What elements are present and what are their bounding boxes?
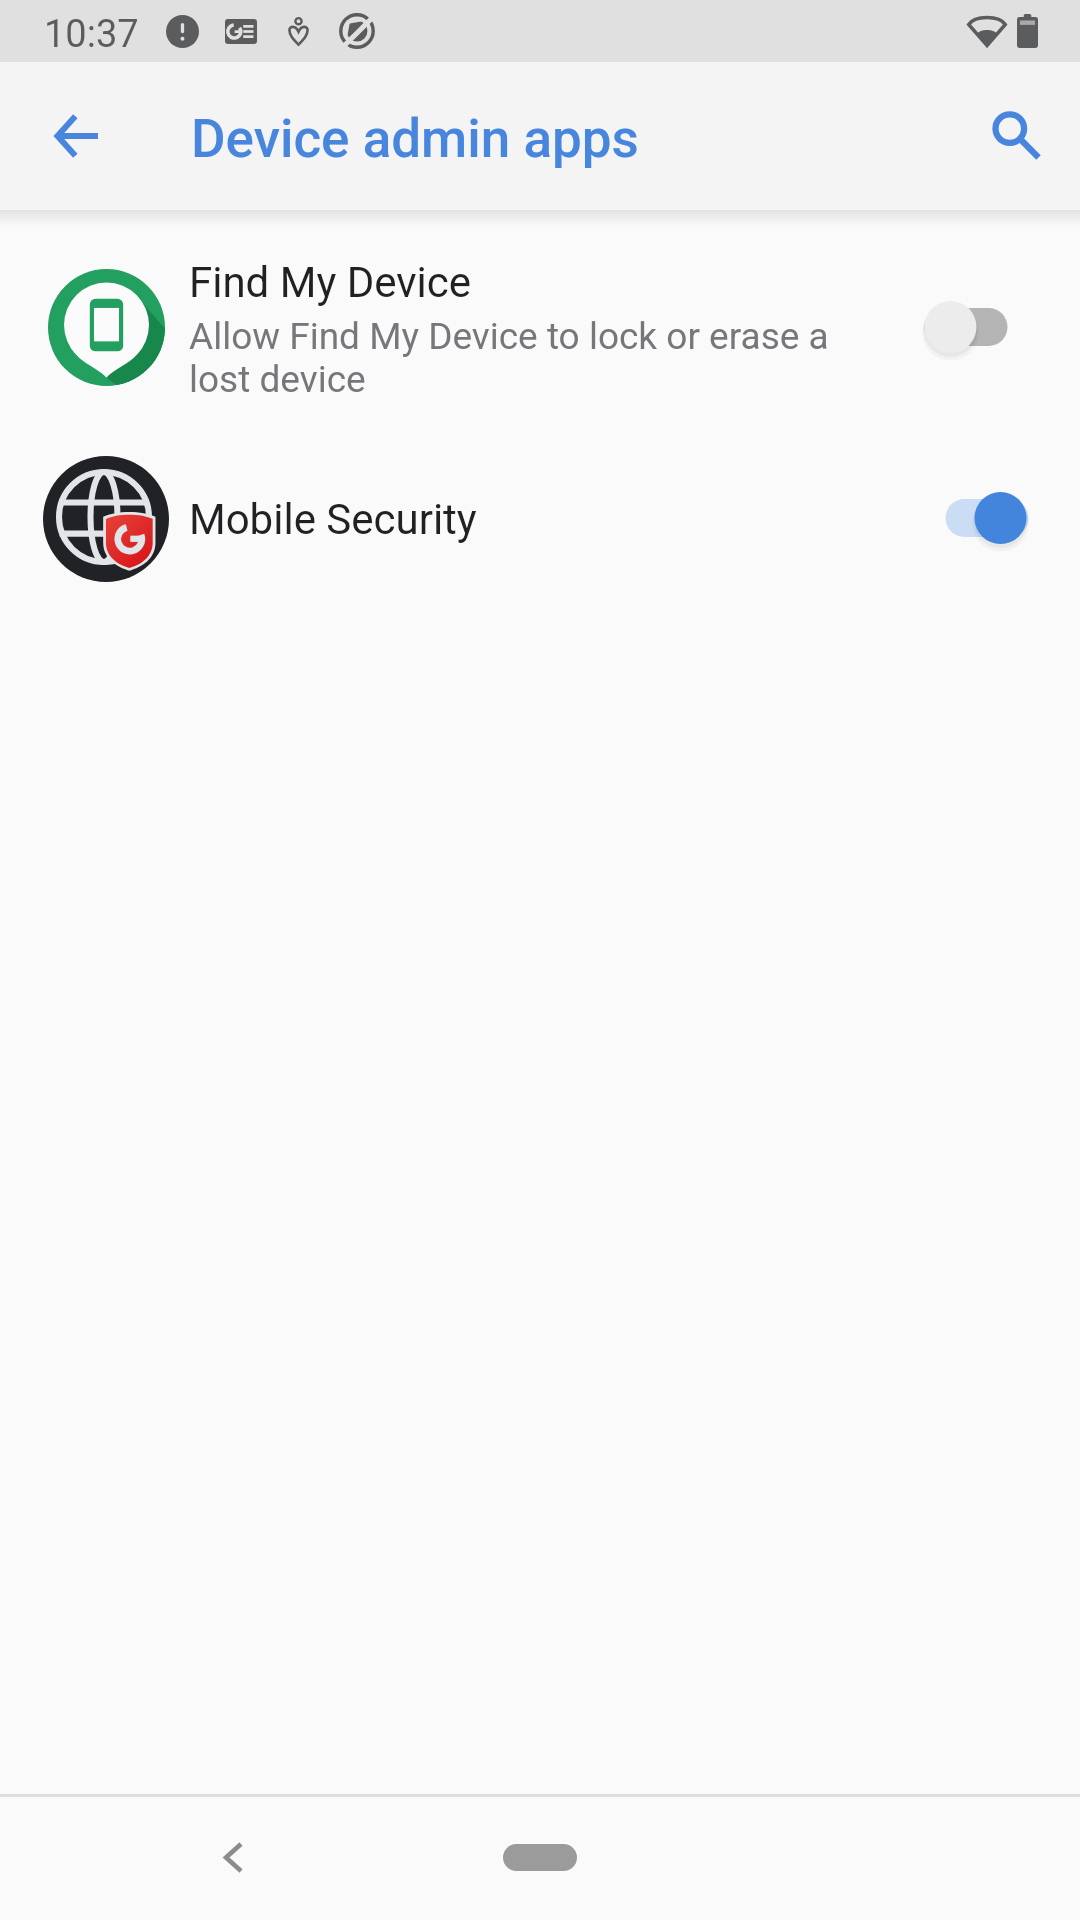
button[interactable]: Search: [968, 87, 1064, 183]
staticText: Allow Find My Device to lock or erase a …: [189, 315, 849, 401]
button[interactable]: Find My Device: [924, 289, 1044, 365]
button[interactable]: Mobile Security: [0, 440, 1080, 596]
button[interactable]: Find My Device: [0, 226, 1080, 430]
staticText: Find My Device: [189, 258, 472, 307]
staticText: 10:37: [44, 12, 139, 57]
staticText: Mobile Security: [189, 495, 477, 544]
button[interactable]: Navigate up: [29, 88, 125, 184]
button[interactable]: Back: [193, 1817, 273, 1897]
button[interactable]: Home: [503, 1844, 577, 1871]
button[interactable]: Mobile Security: [924, 480, 1044, 556]
staticText: Device admin apps: [191, 108, 639, 170]
